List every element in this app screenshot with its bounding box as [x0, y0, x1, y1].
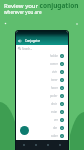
button[interactable]: Tab 2: [44, 141, 52, 149]
staticText: hablar: [50, 54, 58, 58]
staticText: comer: [50, 62, 58, 66]
button[interactable]: Back: [18, 39, 22, 43]
button[interactable]: hacer: [16, 84, 68, 92]
button[interactable]: Tab 3: [56, 141, 64, 149]
button[interactable]: decir: [16, 100, 68, 108]
staticText: estar: [51, 110, 58, 114]
button[interactable]: poder: [16, 92, 68, 100]
button[interactable]: vivir: [16, 68, 68, 76]
button[interactable]: saber: [16, 132, 68, 140]
button[interactable]: estar: [16, 108, 68, 116]
staticText: dar: [53, 126, 58, 130]
staticText: tener: [51, 78, 58, 82]
button[interactable]: Add: [20, 126, 29, 135]
button[interactable]: hablar: [16, 52, 68, 60]
button[interactable]: Tab 0: [20, 141, 28, 149]
button[interactable]: comer: [16, 60, 68, 68]
staticText: wherever you are: [4, 9, 42, 15]
button[interactable]: Tab 1: [32, 141, 40, 149]
staticText: saber: [51, 134, 58, 138]
staticText: ver: [54, 118, 58, 122]
staticText: Conjugator: [25, 39, 41, 43]
button[interactable]: ver: [16, 116, 68, 124]
staticText: Review your conjugation: [4, 1, 79, 10]
staticText: hacer: [51, 86, 58, 90]
staticText: Search...: [22, 47, 33, 51]
staticText: poder: [50, 94, 58, 98]
button[interactable]: tener: [16, 76, 68, 84]
staticText: vivir: [52, 70, 58, 74]
staticText: decir: [51, 102, 58, 106]
button[interactable]: dar: [16, 124, 68, 132]
